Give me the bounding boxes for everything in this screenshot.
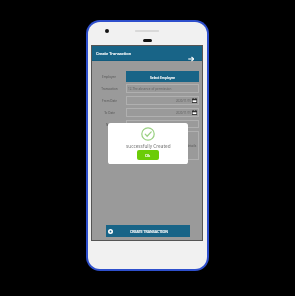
- button[interactable]: Next: [188, 56, 194, 62]
- button[interactable]: Select Employee: [126, 71, 199, 82]
- button[interactable]: To Date: [92, 108, 126, 117]
- staticText: Select Employee: [150, 75, 176, 79]
- other: Pick date: [192, 98, 197, 103]
- button[interactable]: CREATE TRANSACTION: [106, 225, 190, 237]
- staticText: Amount and details: [167, 144, 197, 148]
- button[interactable]: From Date: [92, 96, 126, 105]
- staticText: To Date: [104, 111, 115, 115]
- other: Pick date: [192, 110, 197, 115]
- button[interactable]: 2020/11/15: [126, 108, 199, 117]
- button[interactable]: [126, 120, 199, 128]
- button[interactable]: Note: [92, 120, 126, 129]
- staticText: successfully Created: [126, 143, 171, 149]
- staticText: 12-The absence of permission: [128, 87, 172, 91]
- button[interactable]: Amount and details: [126, 131, 199, 160]
- staticText: Transaction: [101, 87, 118, 91]
- staticText: Employee: [102, 75, 116, 79]
- button[interactable]: Create Transaction: [92, 46, 202, 61]
- button[interactable]: 2020/11/15: [126, 96, 199, 105]
- staticText: Note: [106, 123, 113, 127]
- button[interactable]: 12-The absence of permission: [126, 84, 199, 93]
- staticText: Create Transaction: [96, 51, 132, 56]
- staticText: From Date: [102, 99, 117, 103]
- staticText: 2020/11/15: [176, 111, 191, 115]
- staticText: Ok: [145, 153, 151, 158]
- staticText: 2020/11/15: [176, 99, 191, 103]
- staticText: CREATE TRANSACTION: [130, 229, 168, 234]
- button[interactable]: Employee: [92, 71, 126, 82]
- button[interactable]: Transaction: [92, 84, 126, 93]
- button[interactable]: Ok: [137, 150, 159, 160]
